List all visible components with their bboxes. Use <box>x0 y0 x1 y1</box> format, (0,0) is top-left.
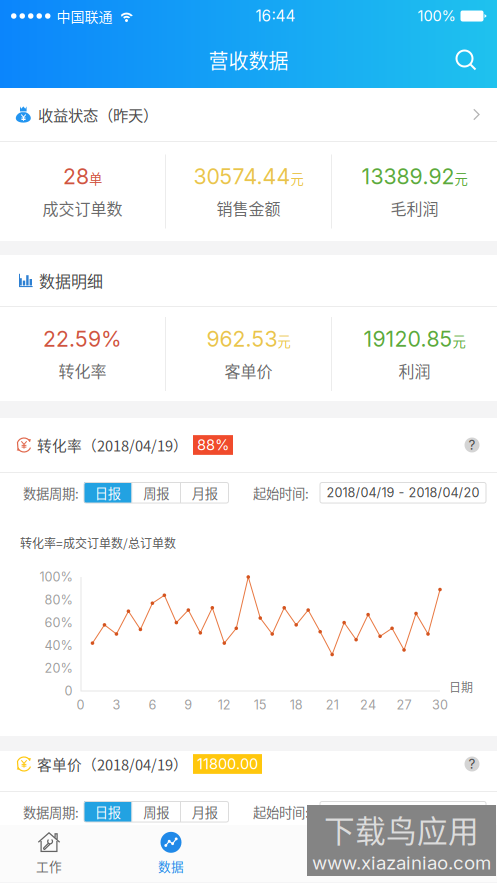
staticText: 22.59% <box>43 326 122 352</box>
staticText: 88% <box>197 436 229 454</box>
button[interactable]: 数据 <box>110 827 232 879</box>
button[interactable]: 帮助说明 <box>459 432 485 458</box>
staticText: 销售金额 <box>216 196 280 219</box>
staticText: 起始时间: <box>253 483 309 503</box>
staticText: 12 <box>218 697 231 713</box>
staticText: 40% <box>44 638 72 653</box>
staticText: 20% <box>44 660 72 676</box>
staticText: 60% <box>44 615 72 630</box>
button[interactable]: 周报 <box>132 482 180 503</box>
staticText: 客单价 <box>224 359 272 382</box>
button[interactable]: 帮助说明 <box>459 751 485 777</box>
staticText: 数据明细 <box>39 269 103 292</box>
button[interactable]: 2018/04/19 - 2018/04/20 <box>320 801 486 822</box>
staticText: 0 <box>64 683 72 699</box>
staticText: 21 <box>326 697 339 713</box>
staticText: 工作 <box>36 857 62 875</box>
staticText: www.xiazainiao.com <box>312 851 491 874</box>
staticText: 周报 <box>143 483 169 502</box>
staticText: 营收数据 <box>208 45 288 74</box>
staticText: 3 <box>112 697 120 713</box>
staticText: 24 <box>360 697 376 713</box>
staticText: 数据周期: <box>23 802 79 822</box>
staticText: 100% <box>39 569 72 585</box>
staticText: 成交订单数 <box>42 196 122 219</box>
staticText: 日报 <box>95 483 121 502</box>
staticText: 转化率=成交订单数/总订单数 <box>20 534 176 551</box>
staticText: 16:44 <box>255 7 295 25</box>
staticText: 80% <box>44 592 72 607</box>
staticText: 962.53 <box>206 326 277 352</box>
button[interactable]: 月报 <box>181 482 228 503</box>
button[interactable]: 工作 <box>0 827 110 879</box>
button[interactable]: 周报 <box>132 801 180 822</box>
staticText: 11800.00 <box>197 755 258 773</box>
staticText: 日报 <box>95 802 121 821</box>
staticText: 转化率 <box>58 359 106 382</box>
staticText: 中国联通 <box>56 6 112 26</box>
staticText: 2018/04/19 - 2018/04/20 <box>326 804 479 819</box>
staticText: 收益状态（昨天） <box>38 103 158 126</box>
staticText: 月报 <box>192 483 218 502</box>
staticText: 元 <box>452 331 465 350</box>
staticText: 日期 <box>449 678 473 695</box>
staticText: 18 <box>290 697 303 713</box>
staticText: 数据 <box>158 857 184 875</box>
staticText: 月报 <box>192 802 218 821</box>
staticText: 2018/04/19 - 2018/04/20 <box>326 485 479 500</box>
staticText: 19120.85 <box>363 326 452 352</box>
staticText: 元 <box>277 331 290 350</box>
staticText: 100% <box>417 7 455 25</box>
button[interactable]: 日报 <box>84 482 131 503</box>
staticText: 13389.92 <box>361 163 454 189</box>
staticText: ? <box>468 756 475 772</box>
staticText: 6 <box>148 697 156 713</box>
staticText: 27 <box>396 697 411 713</box>
staticText: 28 <box>63 163 89 189</box>
staticText: 起始时间: <box>253 802 309 822</box>
staticText: 30 <box>432 697 448 713</box>
staticText: 客单价（2018/04/19） <box>37 753 188 775</box>
staticText: 0 <box>76 697 84 713</box>
button[interactable]: 搜索 <box>444 38 488 82</box>
button[interactable]: 日报 <box>84 801 131 822</box>
staticText: ? <box>468 437 475 453</box>
staticText: 下载鸟应用 <box>324 807 479 851</box>
staticText: 元 <box>454 168 467 188</box>
button[interactable]: 月报 <box>181 801 228 822</box>
staticText: 单 <box>89 168 102 188</box>
button[interactable]: 收益状态（昨天） <box>0 88 497 141</box>
staticText: 30574.44 <box>193 163 290 189</box>
staticText: 9 <box>184 697 192 713</box>
staticText: 转化率（2018/04/19） <box>37 434 188 456</box>
staticText: 利润 <box>398 359 430 382</box>
staticText: 周报 <box>143 802 169 821</box>
button[interactable]: 2018/04/19 - 2018/04/20 <box>320 482 486 503</box>
staticText: 毛利润 <box>390 196 438 219</box>
staticText: 元 <box>290 168 303 188</box>
staticText: 数据周期: <box>23 483 79 503</box>
staticText: 15 <box>254 697 267 713</box>
